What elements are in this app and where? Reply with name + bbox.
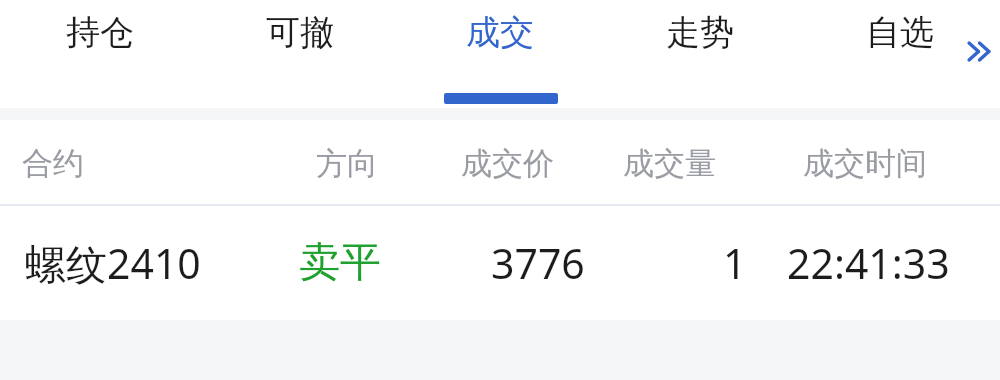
staticText: 持仓 — [66, 11, 134, 54]
button[interactable]: 持仓 — [0, 0, 200, 108]
button[interactable]: 可撤 — [200, 0, 400, 108]
staticText: 螺纹2410 — [25, 235, 201, 291]
button[interactable]: 走势 — [600, 0, 800, 108]
button[interactable]: 自选 — [800, 0, 1000, 108]
staticText: 合约 — [22, 144, 84, 183]
staticText: 成交量 — [623, 144, 716, 183]
button[interactable]: 成交 — [400, 0, 600, 108]
staticText: 3776 — [491, 235, 585, 291]
staticText: 走势 — [666, 11, 734, 54]
staticText: 卖平 — [299, 237, 381, 289]
staticText: 可撤 — [266, 11, 334, 54]
staticText: 成交价 — [461, 144, 554, 183]
staticText: 22:41:33 — [787, 235, 950, 291]
staticText: 成交 — [466, 11, 534, 54]
staticText: 成交时间 — [803, 144, 927, 183]
staticText: 1 — [723, 235, 747, 291]
staticText: 自选 — [866, 11, 934, 54]
button[interactable]: 螺纹2410 — [0, 206, 1000, 320]
staticText: 方向 — [316, 144, 378, 183]
button[interactable]: More tabs — [960, 20, 1000, 80]
